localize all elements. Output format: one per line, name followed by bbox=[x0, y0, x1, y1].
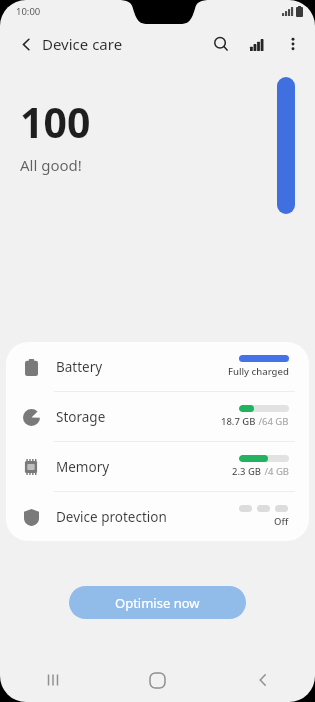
staticText: Optimise now bbox=[115, 594, 200, 612]
button[interactable]: Device protection bbox=[6, 492, 309, 541]
button[interactable]: Search bbox=[203, 26, 239, 62]
button[interactable]: Battery bbox=[6, 342, 309, 391]
staticText: Battery bbox=[56, 358, 103, 376]
staticText: /4 GB bbox=[262, 465, 289, 478]
staticText: Fully charged bbox=[228, 365, 289, 378]
button[interactable]: More options bbox=[275, 26, 311, 62]
button[interactable]: Recent apps bbox=[0, 658, 105, 702]
button[interactable]: Storage bbox=[6, 392, 309, 441]
staticText: 2.3 GB bbox=[232, 465, 262, 478]
staticText: Device care bbox=[42, 34, 123, 54]
button[interactable]: Home bbox=[105, 658, 210, 702]
staticText: Storage bbox=[56, 408, 106, 426]
staticText: 18.7 GB bbox=[221, 415, 256, 428]
staticText: Device protection bbox=[56, 508, 167, 526]
button[interactable]: Back bbox=[8, 26, 44, 62]
staticText: Off bbox=[274, 515, 289, 528]
staticText: Memory bbox=[56, 458, 110, 476]
staticText: 100 bbox=[20, 94, 91, 150]
staticText: 10:00 bbox=[16, 5, 41, 18]
staticText: All good! bbox=[20, 155, 82, 175]
button[interactable]: Optimise now bbox=[69, 586, 246, 619]
staticText: /64 GB bbox=[256, 415, 289, 428]
button[interactable]: Memory bbox=[6, 442, 309, 491]
button[interactable]: Back bbox=[210, 658, 315, 702]
button[interactable]: Usage statistics bbox=[239, 26, 275, 62]
